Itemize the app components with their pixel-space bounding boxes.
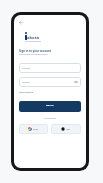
button[interactable]: Apple bbox=[51, 124, 81, 134]
button[interactable]: Sign in bbox=[19, 101, 81, 112]
staticText: Your Benefits Partner bbox=[25, 40, 42, 42]
button[interactable]: Username bbox=[19, 63, 81, 73]
staticText: Or sign in with bbox=[44, 117, 56, 119]
staticText: Google bbox=[33, 128, 39, 130]
staticText: Sign in to your account bbox=[19, 49, 52, 53]
staticText: Apple bbox=[66, 128, 71, 130]
other: Show password bbox=[74, 80, 78, 84]
staticText: Welcome! Enter your details to sign in bbox=[19, 53, 48, 55]
button[interactable]: Password bbox=[19, 77, 81, 87]
button[interactable]: Google bbox=[19, 124, 48, 134]
button[interactable]: Forgot Password? bbox=[19, 91, 34, 93]
staticText: Username bbox=[22, 67, 31, 69]
button[interactable]: Back bbox=[19, 20, 24, 25]
staticText: Password bbox=[22, 81, 30, 83]
staticText: akota bbox=[27, 35, 40, 41]
staticText: Sign in bbox=[46, 104, 54, 107]
